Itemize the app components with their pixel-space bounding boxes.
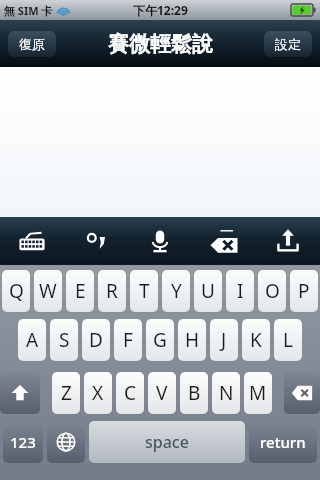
button[interactable]: Shift (0, 372, 40, 414)
button[interactable]: U (194, 270, 222, 312)
staticText: X (92, 380, 104, 406)
staticText: K (250, 327, 262, 353)
staticText: L (283, 327, 293, 353)
button[interactable]: Keyboard (0, 217, 64, 265)
staticText: R (106, 278, 118, 304)
button[interactable]: Z (52, 372, 80, 414)
button[interactable]: Punctuation (64, 217, 128, 265)
staticText: 設定 (275, 36, 301, 52)
staticText: Q (9, 278, 24, 304)
button[interactable]: Share (256, 217, 320, 265)
button[interactable]: Delete (192, 217, 256, 265)
staticText: W (39, 278, 57, 304)
staticText: 123 (10, 432, 36, 452)
button[interactable]: B (180, 372, 208, 414)
button[interactable]: W (34, 270, 62, 312)
staticText: Y (171, 278, 182, 304)
staticText: U (201, 278, 215, 304)
button[interactable]: M (244, 372, 272, 414)
staticText: D (89, 327, 103, 353)
button[interactable]: H (178, 319, 206, 361)
button[interactable]: L (274, 319, 302, 361)
staticText: V (156, 380, 168, 406)
staticText: J (221, 327, 227, 353)
button[interactable]: R (98, 270, 126, 312)
staticText: P (298, 278, 310, 304)
button[interactable]: space (89, 421, 245, 463)
button[interactable]: E (66, 270, 94, 312)
button[interactable]: Y (162, 270, 190, 312)
button[interactable]: X (84, 372, 112, 414)
staticText: Z (61, 380, 72, 406)
button[interactable]: Microphone (128, 217, 192, 265)
button[interactable]: F (114, 319, 142, 361)
staticText: I (237, 278, 244, 304)
button[interactable]: return (249, 421, 317, 463)
staticText: B (188, 380, 201, 406)
staticText: H (185, 327, 200, 353)
staticText: N (219, 380, 234, 406)
button[interactable]: V (148, 372, 176, 414)
button[interactable]: 復原 (8, 31, 56, 57)
staticText: space (145, 431, 189, 453)
staticText: T (139, 278, 150, 304)
button[interactable]: Change keyboard (47, 421, 85, 463)
staticText: A (26, 327, 39, 353)
staticText: 無 SIM 卡 (4, 3, 53, 18)
button[interactable]: G (146, 319, 174, 361)
button[interactable]: Backspace (284, 372, 320, 414)
button[interactable]: 設定 (264, 31, 312, 57)
staticText: 下午12:29 (133, 2, 188, 18)
staticText: M (249, 380, 267, 406)
button[interactable]: P (290, 270, 318, 312)
staticText: C (124, 380, 137, 406)
button[interactable]: J (210, 319, 238, 361)
staticText: F (123, 327, 133, 353)
staticText: G (153, 327, 167, 353)
staticText: 復原 (19, 36, 45, 52)
button[interactable]: N (212, 372, 240, 414)
button[interactable]: S (50, 319, 78, 361)
button[interactable]: K (242, 319, 270, 361)
button[interactable]: C (116, 372, 144, 414)
staticText: O (265, 278, 280, 304)
button[interactable]: D (82, 319, 110, 361)
button[interactable]: I (226, 270, 254, 312)
button[interactable]: T (130, 270, 158, 312)
staticText: 賽微輕鬆說 (108, 31, 213, 57)
button[interactable]: Q (2, 270, 30, 312)
button[interactable]: 123 (3, 421, 43, 463)
button[interactable]: O (258, 270, 286, 312)
button[interactable]: A (18, 319, 46, 361)
staticText: return (260, 432, 306, 452)
staticText: S (59, 327, 70, 353)
staticText: E (75, 278, 86, 304)
